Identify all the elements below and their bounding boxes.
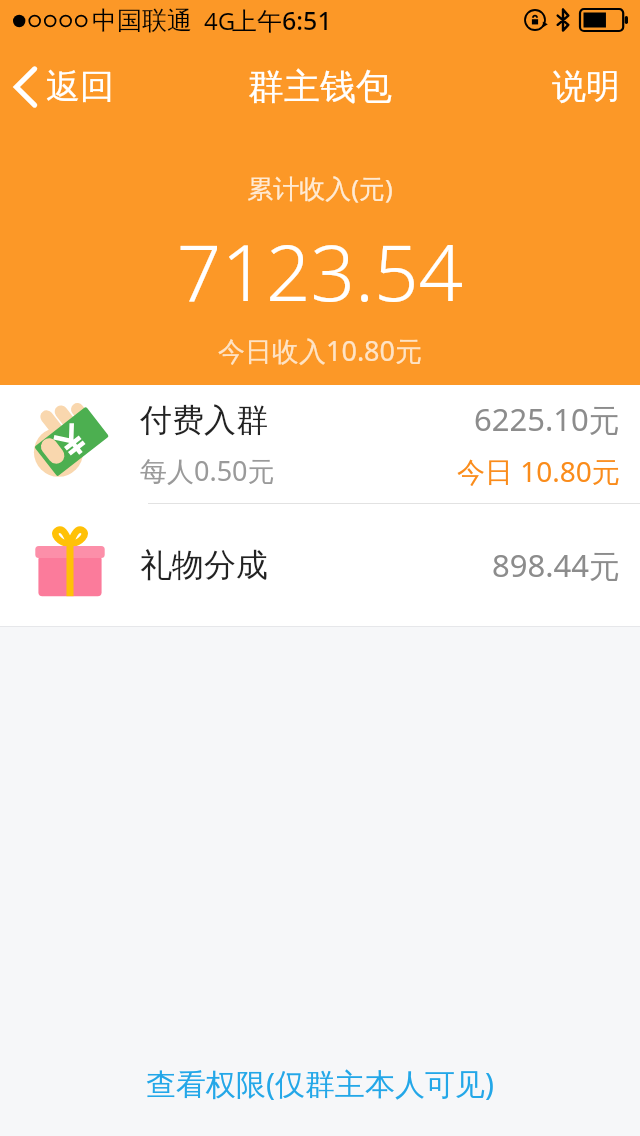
staticText: 6225.10元 <box>474 398 620 440</box>
button[interactable]: 说明 <box>532 55 640 118</box>
button[interactable]: 查看权限(仅群主本人可见) <box>122 1045 518 1122</box>
staticText: 今日 10.80元 <box>457 452 620 490</box>
staticText: 群主钱包 <box>248 64 392 109</box>
button[interactable]: 返回 <box>0 57 132 116</box>
staticText: 每人0.50元 <box>140 452 275 489</box>
staticText: 上午6:51 <box>232 3 332 37</box>
button[interactable]: 礼物分成 <box>0 504 640 626</box>
staticText: 付费入群 <box>140 400 268 440</box>
staticText: 说明 <box>552 65 620 108</box>
staticText: 898.44元 <box>492 544 620 586</box>
staticText: 累计收入(元) <box>0 170 640 206</box>
staticText: 4G <box>204 4 236 37</box>
staticText: 礼物分成 <box>140 545 492 585</box>
staticText: 中国联通 <box>92 5 192 36</box>
staticText: 今日收入10.80元 <box>0 332 640 369</box>
staticText: 返回 <box>46 65 114 108</box>
button[interactable]: 付费入群 <box>0 385 640 503</box>
staticText: 查看权限(仅群主本人可见) <box>146 1063 494 1104</box>
staticText: 7123.54 <box>0 218 640 324</box>
